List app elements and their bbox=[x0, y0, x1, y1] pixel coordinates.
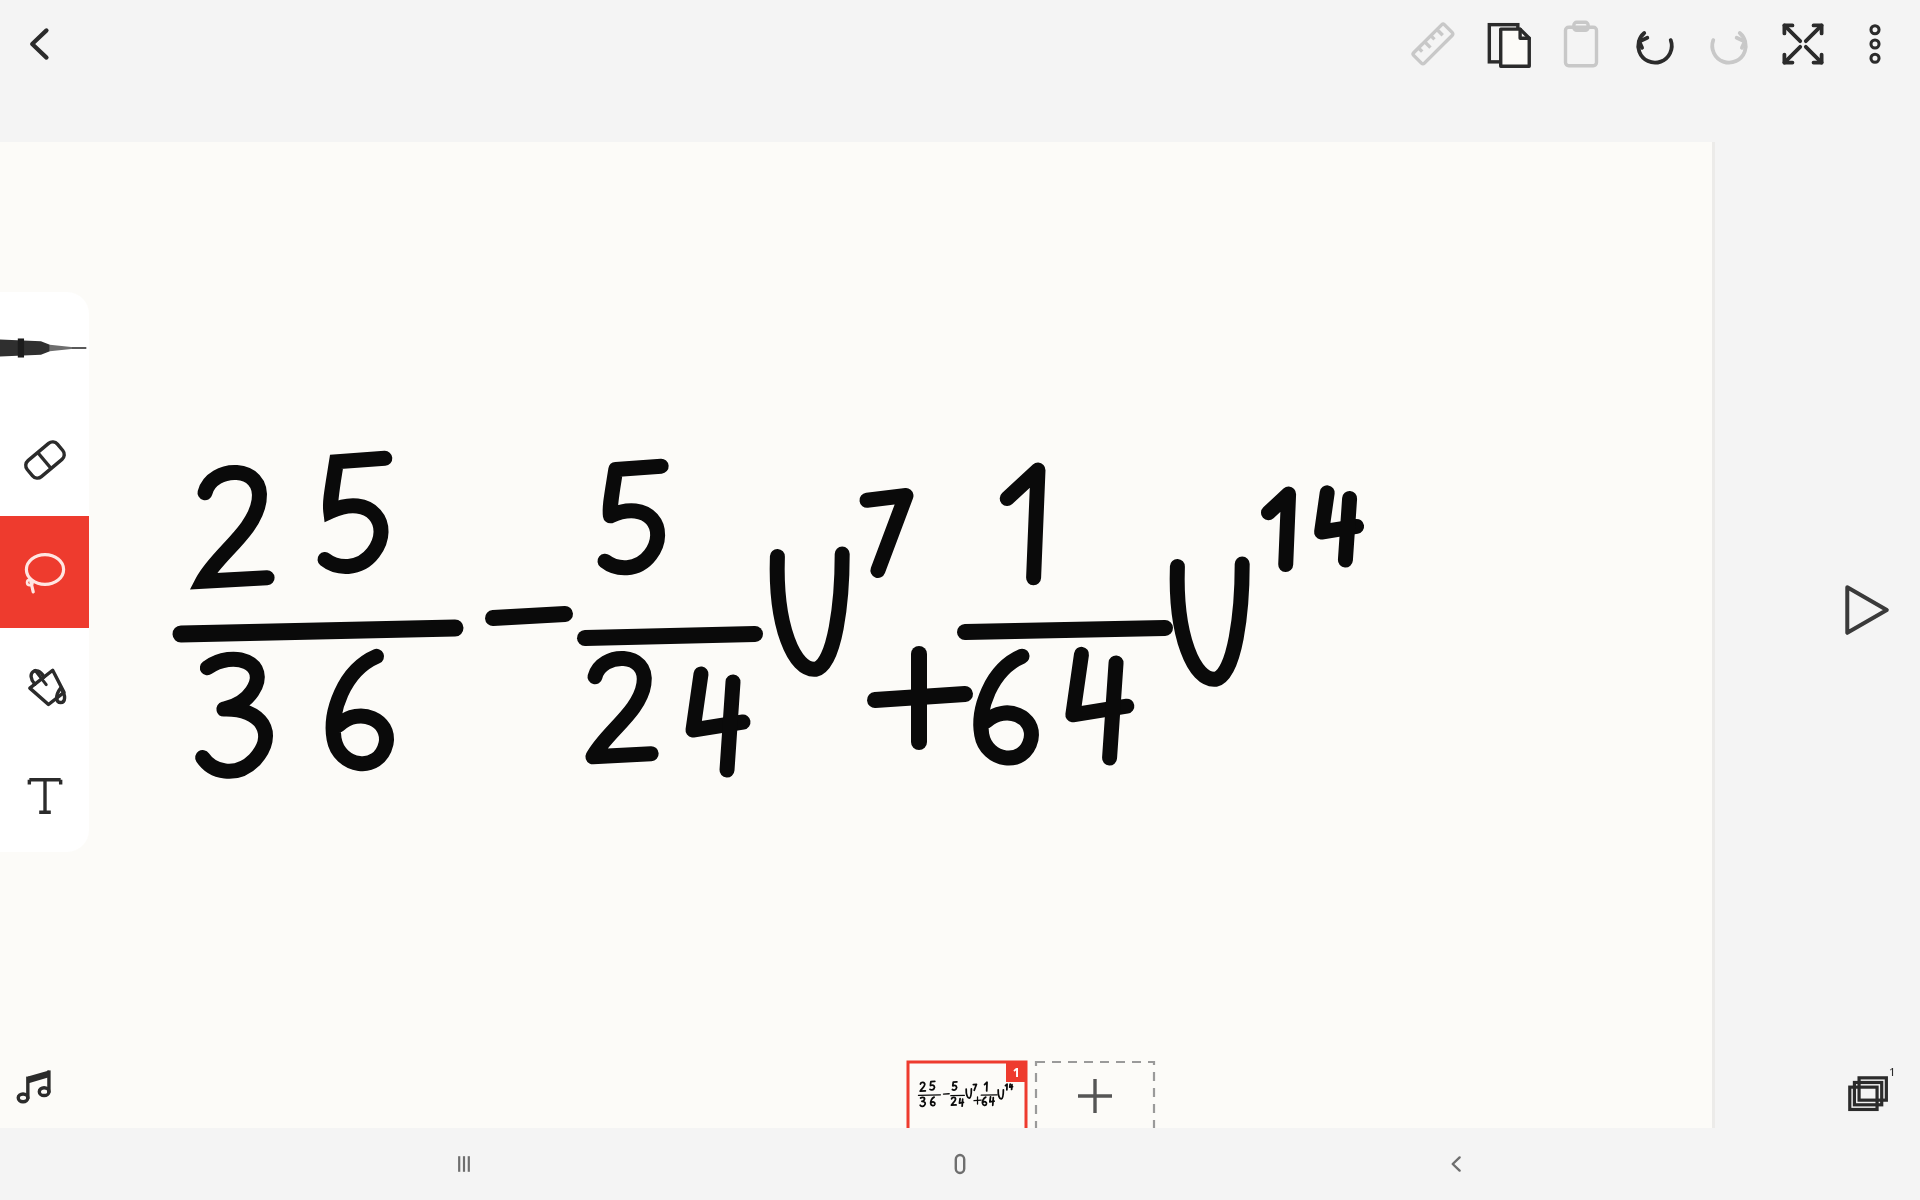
button[interactable]: Paste bbox=[1550, 13, 1612, 75]
button[interactable]: Back bbox=[1424, 1132, 1488, 1196]
button[interactable]: Recents bbox=[432, 1132, 496, 1196]
button[interactable]: Page 1 bbox=[908, 1062, 1026, 1130]
button[interactable]: Copy bbox=[1476, 13, 1538, 75]
button[interactable]: Text bbox=[0, 740, 89, 852]
button[interactable]: Add page bbox=[1036, 1062, 1154, 1130]
button[interactable]: Music bbox=[8, 1058, 70, 1120]
button[interactable]: Eraser bbox=[0, 404, 89, 516]
button[interactable]: Undo bbox=[1624, 13, 1686, 75]
button[interactable]: Play bbox=[1826, 572, 1902, 648]
staticText: 1 bbox=[1013, 1064, 1020, 1080]
button[interactable]: Layers bbox=[1838, 1058, 1900, 1120]
button[interactable]: Selection bbox=[0, 516, 89, 628]
button[interactable]: Full screen bbox=[1772, 13, 1834, 75]
staticText: 1 bbox=[1889, 1064, 1896, 1079]
button[interactable]: Pen bbox=[0, 292, 89, 404]
button[interactable]: Home bbox=[928, 1132, 992, 1196]
button[interactable]: Redo bbox=[1698, 13, 1760, 75]
button[interactable]: Fill bbox=[0, 628, 89, 740]
button[interactable]: More options bbox=[1844, 13, 1906, 75]
button[interactable]: Back bbox=[8, 13, 70, 75]
button[interactable]: Ruler bbox=[1402, 13, 1464, 75]
